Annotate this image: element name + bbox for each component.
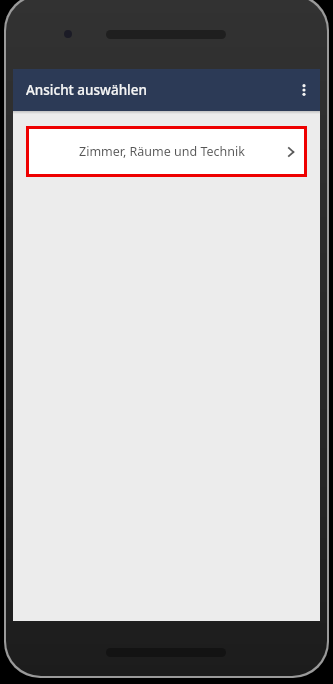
staticText: Ansicht auswählen (26, 81, 147, 99)
staticText: Zimmer, Räume und Technik (79, 143, 275, 160)
button[interactable]: Zimmer, Räume und Technik (26, 126, 307, 177)
button[interactable]: More options (288, 69, 320, 111)
